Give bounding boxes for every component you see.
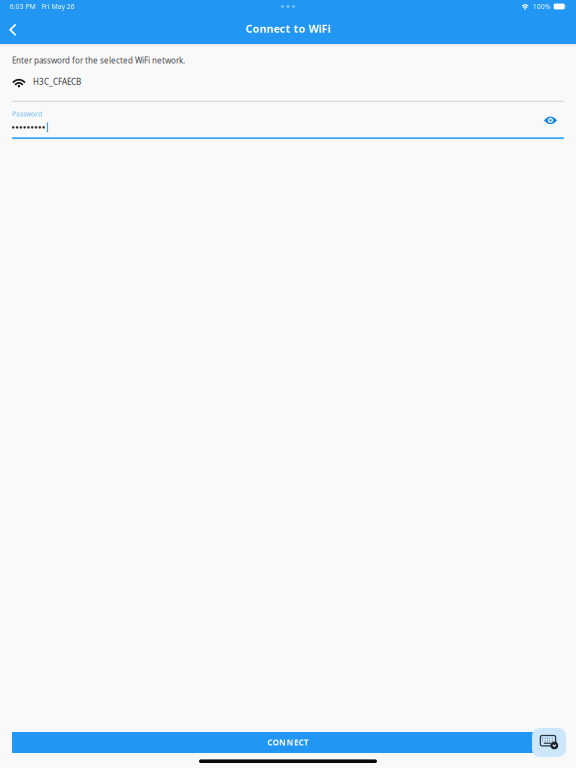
staticText: Fri May 26 xyxy=(41,2,74,11)
staticText: H3C_CFAECB xyxy=(33,76,81,87)
staticText: CONNECT xyxy=(267,737,309,748)
button[interactable]: Back xyxy=(0,13,26,44)
button[interactable]: CONNECT xyxy=(12,732,564,753)
staticText: 100% xyxy=(533,2,551,11)
button[interactable]: Show password xyxy=(543,115,557,125)
staticText: Enter password for the selected WiFi net… xyxy=(12,55,185,66)
staticText: Password xyxy=(12,109,42,118)
button[interactable]: H3C_CFAECB xyxy=(12,76,564,88)
staticText: Connect to WiFi xyxy=(245,21,330,36)
button[interactable]: Dismiss keyboard xyxy=(532,728,566,757)
staticText: 6:03 PM xyxy=(9,2,35,11)
